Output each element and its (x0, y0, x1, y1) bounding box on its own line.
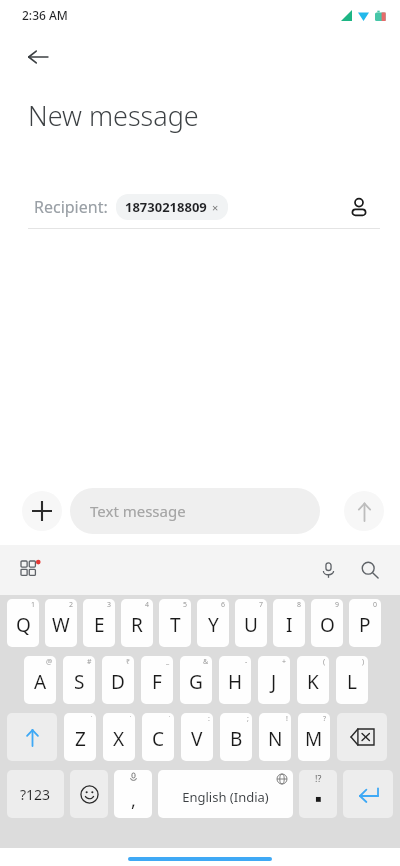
staticText: & (203, 657, 209, 667)
staticText: M (305, 726, 323, 752)
button[interactable]: 6 (197, 599, 229, 647)
button[interactable]: ) (336, 656, 368, 704)
button[interactable]: 3 (83, 599, 115, 647)
button[interactable]: 9 (311, 599, 343, 647)
button[interactable]: ˙ (103, 713, 135, 761)
button[interactable]: Search (354, 554, 386, 586)
staticText: ? (323, 714, 327, 724)
button[interactable]: Keyboard toolbar (14, 554, 46, 586)
button[interactable]: 8 (273, 599, 305, 647)
staticText: ˙ (130, 714, 132, 724)
staticText: 8 (297, 600, 302, 610)
staticText: 2:36 AM (22, 7, 68, 23)
button[interactable]: Emoji (70, 770, 108, 818)
button[interactable]: 1 (7, 599, 39, 647)
staticText: 2 (69, 600, 74, 610)
staticText: B (230, 726, 243, 752)
button[interactable]: ₹ (102, 656, 134, 704)
staticText: I (286, 612, 293, 638)
staticText: ˙ (91, 714, 93, 724)
staticText: K (307, 669, 319, 695)
button[interactable]: Send (344, 491, 384, 531)
button[interactable]: ˙ (64, 713, 96, 761)
staticText: J (271, 669, 277, 695)
button[interactable]: + (258, 656, 290, 704)
staticText: 0 (373, 600, 378, 610)
button[interactable]: Voice input (312, 554, 344, 586)
staticText: E (94, 612, 105, 638)
staticText: Y (208, 612, 219, 638)
button[interactable]: 2 (45, 599, 77, 647)
button[interactable]: Add contact (342, 190, 376, 224)
staticText: U (244, 612, 258, 638)
button[interactable]: 7 (235, 599, 267, 647)
staticText: 5 (183, 600, 188, 610)
staticText: ▪ (315, 793, 322, 805)
button[interactable]: 4 (121, 599, 153, 647)
staticText: R (131, 612, 143, 638)
staticText: - (245, 657, 248, 667)
staticText: ?123 (20, 785, 51, 804)
staticText: Q (16, 612, 31, 638)
staticText: Z (75, 726, 86, 752)
staticText: V (191, 726, 203, 752)
staticText: 1 (31, 600, 36, 610)
staticText: G (189, 669, 203, 695)
button[interactable]: ( (297, 656, 329, 704)
staticText: @ (46, 657, 53, 667)
button[interactable]: & (180, 656, 212, 704)
button[interactable]: Shift (7, 713, 57, 761)
staticText: Text message (90, 501, 186, 521)
staticText: O (320, 612, 335, 638)
button[interactable]: 18730218809 (116, 194, 228, 220)
button[interactable]: 0 (349, 599, 381, 647)
button[interactable]: : (181, 713, 213, 761)
staticText: , (131, 788, 136, 813)
staticText: W (52, 612, 70, 638)
staticText: N (268, 726, 283, 752)
staticText: New message (28, 97, 199, 134)
staticText: S (74, 669, 85, 695)
staticText: ( (323, 657, 326, 667)
staticText: ₹ (126, 657, 131, 667)
staticText: English (India) (182, 788, 269, 806)
staticText: _ (166, 657, 170, 667)
staticText: L (347, 669, 357, 695)
button[interactable]: Attach (22, 491, 62, 531)
button[interactable]: @ (24, 656, 56, 704)
staticText: ; (247, 714, 249, 724)
button[interactable]: ; (220, 713, 252, 761)
staticText: 7 (259, 600, 264, 610)
staticText: T (170, 612, 181, 638)
staticText: D (111, 669, 125, 695)
staticText: 4 (145, 600, 150, 610)
staticText: F (152, 669, 162, 695)
staticText: 9 (335, 600, 340, 610)
button[interactable]: ! (259, 713, 291, 761)
button[interactable]: Text message (70, 488, 320, 534)
button[interactable]: , (114, 770, 152, 818)
button[interactable]: Back (16, 35, 60, 79)
button[interactable]: ?123 (7, 770, 64, 818)
staticText: 18730218809 (125, 198, 207, 216)
staticText: ! (286, 714, 288, 724)
button[interactable]: 5 (159, 599, 191, 647)
button[interactable]: _ (141, 656, 173, 704)
staticText: × (212, 200, 219, 215)
staticText: A (34, 669, 47, 695)
staticText: P (359, 612, 371, 638)
staticText: Recipient: (34, 196, 108, 218)
button[interactable]: Backspace (337, 713, 387, 761)
button[interactable]: !? (299, 770, 337, 818)
staticText: !? (315, 772, 322, 784)
button[interactable]: ˙ (142, 713, 174, 761)
staticText: + (282, 657, 287, 667)
button[interactable]: English (India) (158, 770, 293, 818)
button[interactable]: - (219, 656, 251, 704)
staticText: X (113, 726, 125, 752)
staticText: C (152, 726, 165, 752)
button[interactable]: Enter (343, 770, 393, 818)
button[interactable]: # (63, 656, 95, 704)
staticText: ˙ (169, 714, 171, 724)
button[interactable]: ? (298, 713, 330, 761)
